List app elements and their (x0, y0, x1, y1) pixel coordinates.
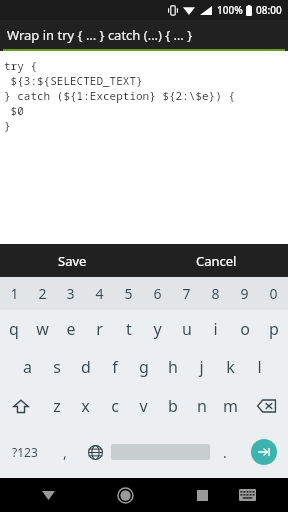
staticText: v (139, 395, 148, 417)
staticText: c (111, 395, 119, 417)
staticText: 1 (10, 284, 19, 303)
staticText: 9 (240, 284, 249, 303)
staticText: u (182, 318, 192, 340)
staticText: i (213, 318, 218, 340)
button[interactable]: Enter (239, 426, 288, 478)
staticText: y (153, 318, 162, 340)
staticText: Save (58, 252, 87, 270)
button[interactable]: s (42, 348, 71, 386)
staticText: Wrap in try { … } catch (…) { … } (7, 26, 193, 44)
button[interactable]: g (129, 348, 158, 386)
button[interactable]: Keyboard (225, 478, 270, 512)
staticText: 7 (182, 284, 191, 303)
button[interactable]: try { (0, 51, 288, 244)
staticText: r (96, 318, 103, 340)
button[interactable]: k (216, 348, 245, 386)
button[interactable]: p (259, 310, 288, 348)
button[interactable]: l (245, 348, 274, 386)
button[interactable]: h (158, 348, 187, 386)
staticText: } (4, 118, 11, 133)
button[interactable]: 1 (0, 277, 28, 310)
button[interactable]: 7 (172, 277, 201, 310)
staticText: t (126, 318, 132, 340)
staticText: 8 (211, 284, 220, 303)
staticText: j (199, 356, 204, 378)
staticText: k (226, 356, 235, 378)
staticText: 08:00 (256, 3, 282, 17)
staticText: q (9, 318, 19, 340)
staticText: . (223, 443, 227, 462)
button[interactable]: n (187, 386, 216, 426)
button[interactable]: Home (103, 478, 148, 512)
button[interactable]: Save (0, 244, 144, 277)
staticText: n (197, 395, 207, 417)
staticText: 100% (217, 3, 243, 17)
staticText: o (240, 318, 250, 340)
button[interactable]: e (56, 310, 85, 348)
staticText: z (53, 395, 61, 417)
staticText: , (63, 443, 67, 462)
button[interactable]: 8 (201, 277, 230, 310)
button[interactable]: , (50, 426, 79, 478)
button[interactable]: Backspace (245, 386, 288, 426)
staticText: 6 (153, 284, 162, 303)
button[interactable]: Cancel (144, 244, 288, 277)
staticText: ${3:${SELECTED_TEXT} (4, 73, 143, 88)
button[interactable]: 6 (143, 277, 172, 310)
button[interactable]: b (158, 386, 187, 426)
button[interactable]: w (28, 310, 56, 348)
button[interactable]: Change language (79, 426, 111, 478)
button[interactable]: j (187, 348, 216, 386)
button[interactable]: Shift (0, 386, 42, 426)
staticText: 2 (38, 284, 47, 303)
staticText: x (81, 395, 90, 417)
staticText: ?123 (12, 444, 38, 460)
staticText: l (257, 356, 262, 378)
button[interactable]: ?123 (0, 426, 50, 478)
staticText: 4 (95, 284, 104, 303)
button[interactable]: Wrap in try { … } catch (…) { … } (0, 20, 288, 49)
button[interactable]: 0 (259, 277, 288, 310)
button[interactable]: Recent apps (180, 478, 225, 512)
staticText: e (66, 318, 76, 340)
button[interactable]: z (42, 386, 71, 426)
button[interactable]: 5 (114, 277, 143, 310)
staticText: s (53, 356, 61, 378)
button[interactable]: 4 (85, 277, 114, 310)
staticText: try { (4, 58, 37, 73)
staticText: 0 (269, 284, 278, 303)
button[interactable]: 9 (230, 277, 259, 310)
button[interactable]: t (114, 310, 143, 348)
button[interactable]: c (100, 386, 129, 426)
staticText: } catch (${1:Exception} ${2:\$e}) { (4, 88, 235, 103)
staticText: 3 (66, 284, 75, 303)
button[interactable]: m (216, 386, 245, 426)
button[interactable]: u (172, 310, 201, 348)
button[interactable]: a (13, 348, 42, 386)
staticText: d (81, 356, 91, 378)
button[interactable]: f (100, 348, 129, 386)
staticText: a (23, 356, 32, 378)
staticText: b (168, 395, 178, 417)
staticText: g (139, 356, 149, 378)
button[interactable]: 3 (56, 277, 85, 310)
button[interactable]: o (230, 310, 259, 348)
button[interactable]: r (85, 310, 114, 348)
button[interactable]: x (71, 386, 100, 426)
button[interactable]: q (0, 310, 28, 348)
staticText: Cancel (196, 252, 237, 270)
staticText: 5 (124, 284, 133, 303)
staticText: f (112, 356, 118, 378)
staticText: $0 (4, 103, 24, 118)
staticText: m (223, 395, 238, 417)
button[interactable]: v (129, 386, 158, 426)
button[interactable]: . (210, 426, 239, 478)
staticText: p (269, 318, 279, 340)
button[interactable]: Back (26, 478, 71, 512)
button[interactable]: d (71, 348, 100, 386)
button[interactable]: Space (111, 426, 210, 478)
button[interactable]: y (143, 310, 172, 348)
button[interactable]: i (201, 310, 230, 348)
button[interactable]: 2 (28, 277, 56, 310)
staticText: h (168, 356, 178, 378)
